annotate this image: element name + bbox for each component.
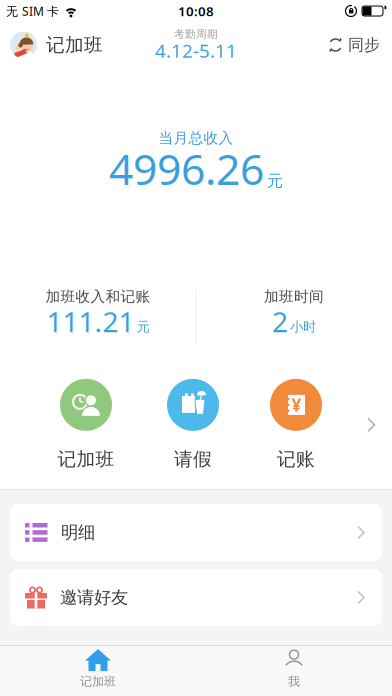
staticText: 111.21 — [46, 303, 134, 340]
staticText: 记加班 — [80, 674, 116, 689]
staticText: 考勤周期 — [174, 28, 218, 41]
button[interactable]: 邀请好友 — [10, 569, 382, 626]
staticText: 加班时间 — [264, 288, 324, 306]
button[interactable]: 明细 — [10, 504, 382, 561]
staticText: 明细 — [61, 522, 95, 543]
staticText: 元 — [267, 171, 283, 191]
button[interactable]: 记加班 — [0, 37, 103, 64]
button[interactable]: ¥ — [256, 379, 336, 471]
button[interactable]: 考勤周期 — [155, 32, 237, 70]
staticText: 请假 — [174, 448, 212, 471]
staticText: 邀请好友 — [60, 587, 128, 608]
button[interactable]: 我 — [196, 646, 392, 696]
staticText: 4.12-5.11 — [155, 38, 237, 63]
button[interactable]: 同步 — [328, 41, 392, 61]
staticText: 小时 — [290, 318, 316, 335]
staticText: 10:08 — [178, 2, 214, 20]
staticText: ¥ — [291, 393, 301, 416]
staticText: 无 SIM 卡 — [6, 3, 59, 19]
staticText: 当月总收入 — [158, 129, 233, 147]
staticText: 记账 — [277, 448, 315, 471]
staticText: 记加班 — [46, 33, 103, 56]
staticText: 我 — [288, 674, 300, 689]
staticText: 4996.26 — [109, 140, 264, 197]
staticText: 元 — [136, 318, 149, 335]
button[interactable]: 记加班 — [46, 379, 126, 471]
staticText: 记加班 — [57, 448, 114, 471]
staticText: 同步 — [348, 35, 380, 55]
staticText: 2 — [272, 303, 288, 340]
button[interactable]: 请假 — [153, 379, 233, 471]
button[interactable]: 记加班 — [0, 646, 196, 696]
staticText: 加班收入和记账 — [45, 288, 150, 306]
